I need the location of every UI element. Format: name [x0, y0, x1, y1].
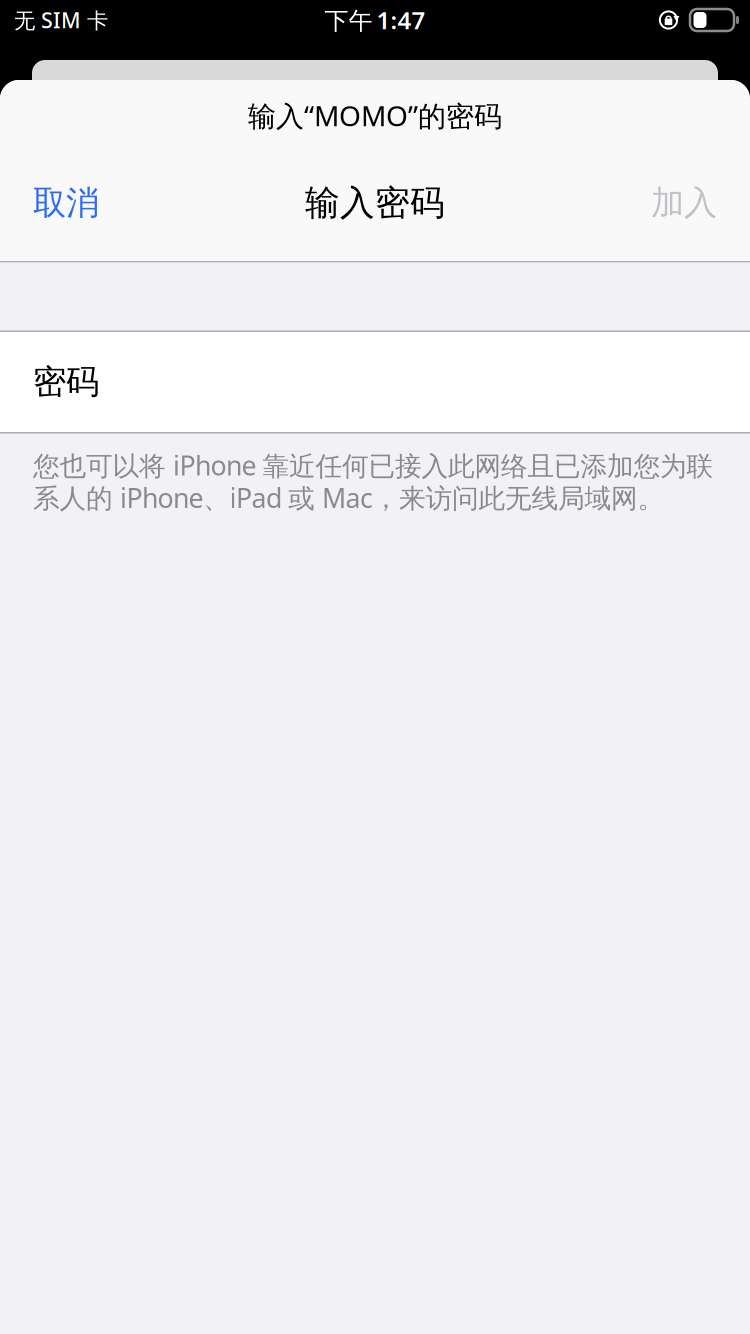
button[interactable]: 加入 [627, 170, 717, 235]
staticText: 加入 [651, 182, 717, 223]
staticText: 输入“MOMO”的密码 [248, 97, 502, 134]
staticText: 下午 1:47 [324, 4, 425, 36]
button[interactable]: 取消 [33, 170, 123, 235]
staticText: 您也可以将 iPhone 靠近任何已接入此网络且已添加您为联系人的 iPhone… [33, 447, 713, 515]
staticText: 输入密码 [305, 182, 445, 224]
staticText: 无 SIM 卡 [14, 6, 108, 34]
staticText: 密码 [33, 361, 99, 402]
staticText: 取消 [33, 182, 99, 223]
button[interactable]: 密码 [0, 332, 750, 432]
